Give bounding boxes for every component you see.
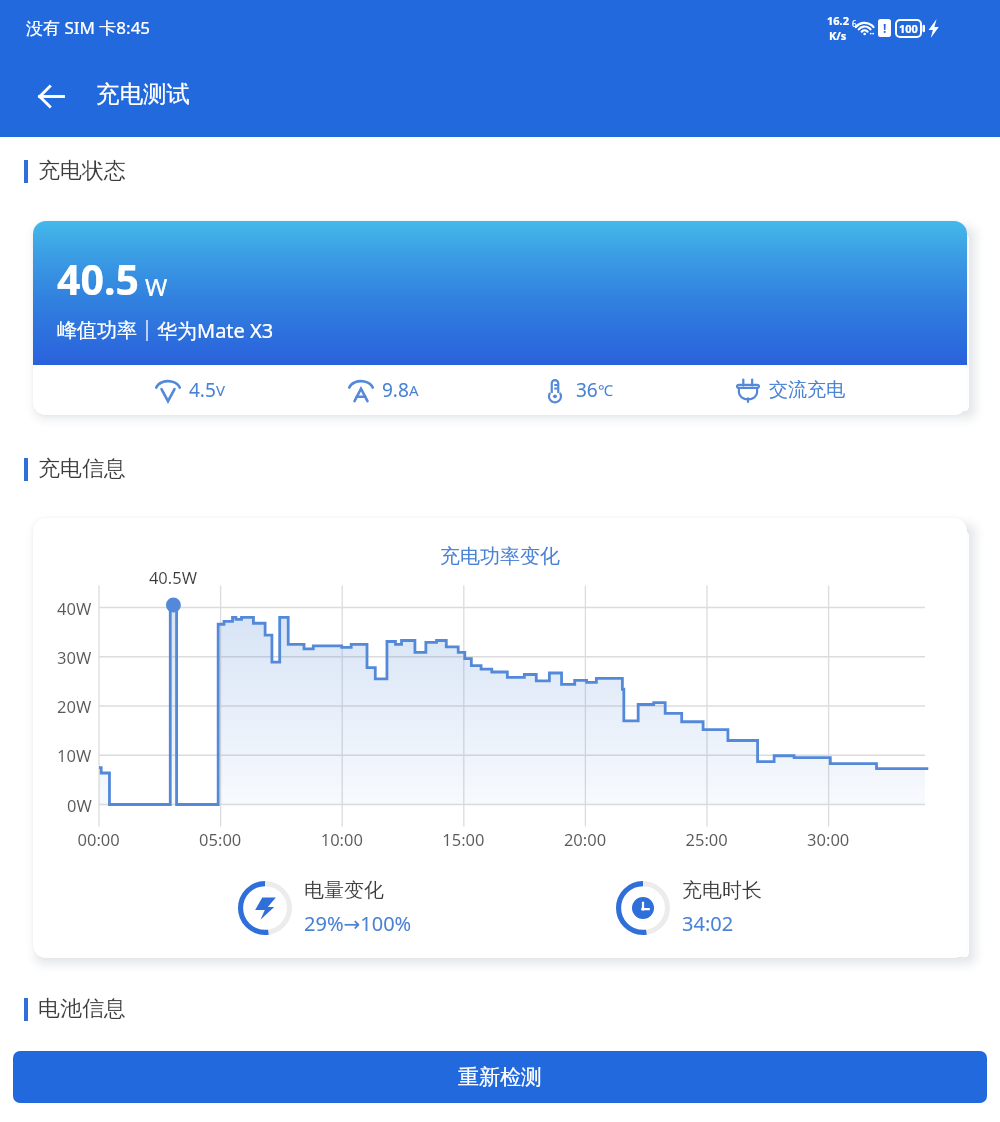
staticText: 电池信息 — [38, 995, 126, 1023]
staticText: 6 — [852, 18, 857, 29]
button[interactable]: 电量变化 — [238, 878, 412, 937]
button[interactable]: Back — [26, 71, 76, 121]
staticText: 34:02 — [682, 910, 734, 937]
staticText: 华为Mate X3 — [157, 317, 274, 344]
button[interactable]: 重新检测 — [13, 1051, 987, 1103]
staticText: 充电测试 — [96, 79, 190, 109]
staticText: 重新检测 — [458, 1064, 542, 1090]
other: Current — [348, 377, 374, 403]
staticText: 29%→100% — [304, 910, 412, 937]
staticText: V — [216, 380, 226, 400]
other: Voltage — [155, 377, 181, 403]
staticText: ! — [883, 20, 887, 36]
button[interactable]: Charging type — [735, 377, 845, 403]
staticText: 充电信息 — [38, 455, 126, 483]
staticText: W — [145, 270, 168, 303]
staticText: 充电功率变化 — [33, 544, 967, 569]
staticText: 电量变化 — [304, 878, 384, 903]
other: Temperature — [542, 377, 568, 403]
staticText: 36 — [576, 377, 598, 403]
staticText: ℃ — [598, 380, 613, 400]
staticText: 充电状态 — [38, 157, 126, 185]
button[interactable]: Temperature — [542, 377, 613, 403]
staticText: 交流充电 — [769, 378, 845, 402]
staticText: 峰值功率 — [57, 318, 137, 343]
staticText: 40.5 — [57, 251, 139, 307]
staticText: 100 — [899, 21, 918, 36]
staticText: 充电时长 — [682, 878, 762, 903]
staticText: K/s — [829, 28, 847, 43]
button[interactable]: Current — [348, 377, 419, 403]
staticText: 4.5 — [189, 377, 216, 403]
button[interactable]: 充电时长 — [616, 878, 762, 937]
staticText: 没有 SIM 卡8:45 — [26, 16, 151, 39]
staticText: 9.8 — [382, 377, 409, 403]
button[interactable]: Voltage — [155, 377, 226, 403]
staticText: A — [409, 380, 419, 400]
other: Charging type — [735, 377, 761, 403]
staticText: 16.2 — [827, 13, 849, 28]
